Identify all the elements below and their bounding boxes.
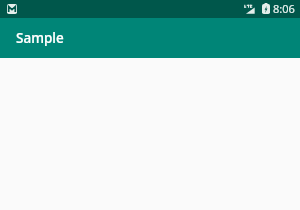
other: New mail notification	[7, 4, 17, 14]
other: Battery	[262, 3, 270, 14]
other: LTE signal	[244, 3, 255, 14]
staticText: Sample	[16, 29, 64, 47]
staticText: 8:06	[273, 1, 295, 16]
